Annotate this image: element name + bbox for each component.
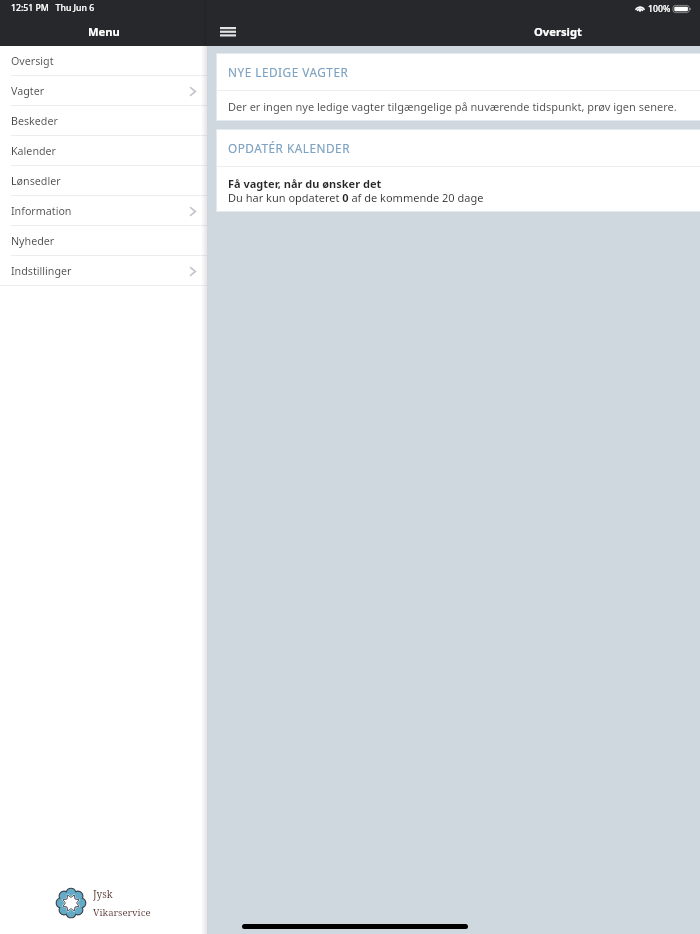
staticText: Oversigt	[11, 54, 54, 69]
staticText: Få vagter, når du ønsker det	[228, 176, 382, 191]
staticText: NYE LEDIGE VAGTER	[228, 64, 349, 80]
staticText: Kalender	[11, 144, 57, 159]
staticText: Beskeder	[11, 114, 58, 129]
staticText: Lønsedler	[11, 174, 61, 189]
staticText: Jysk	[93, 887, 113, 901]
staticText: Du har kun opdateret 0 af de kommende 20…	[228, 190, 484, 205]
button[interactable]: Vagter	[0, 76, 207, 106]
button[interactable]: NYE LEDIGE VAGTER	[216, 53, 700, 121]
staticText: Vagter	[11, 84, 45, 99]
staticText: Der er ingen nye ledige vagter tilgængel…	[228, 99, 677, 114]
button[interactable]: Nyheder	[0, 226, 207, 256]
staticText: Vikarservice	[93, 906, 151, 919]
staticText: Nyheder	[11, 234, 55, 249]
staticText: 12:51 PM Thu Jun 6	[11, 2, 95, 14]
button[interactable]: Open navigation menu	[207, 14, 247, 48]
button[interactable]: OPDATÉR KALENDER	[216, 129, 700, 212]
staticText: Information	[11, 204, 72, 219]
button[interactable]: Oversigt	[0, 46, 207, 76]
staticText: Indstillinger	[11, 264, 72, 279]
staticText: Oversigt	[534, 24, 582, 39]
button[interactable]: Beskeder	[0, 106, 207, 136]
button[interactable]: Information	[0, 196, 207, 226]
button[interactable]: Lønsedler	[0, 166, 207, 196]
staticText: OPDATÉR KALENDER	[228, 140, 351, 156]
staticText: Menu	[88, 24, 120, 39]
button[interactable]: Kalender	[0, 136, 207, 166]
button[interactable]: Indstillinger	[0, 256, 207, 286]
staticText: 100%	[648, 3, 671, 15]
